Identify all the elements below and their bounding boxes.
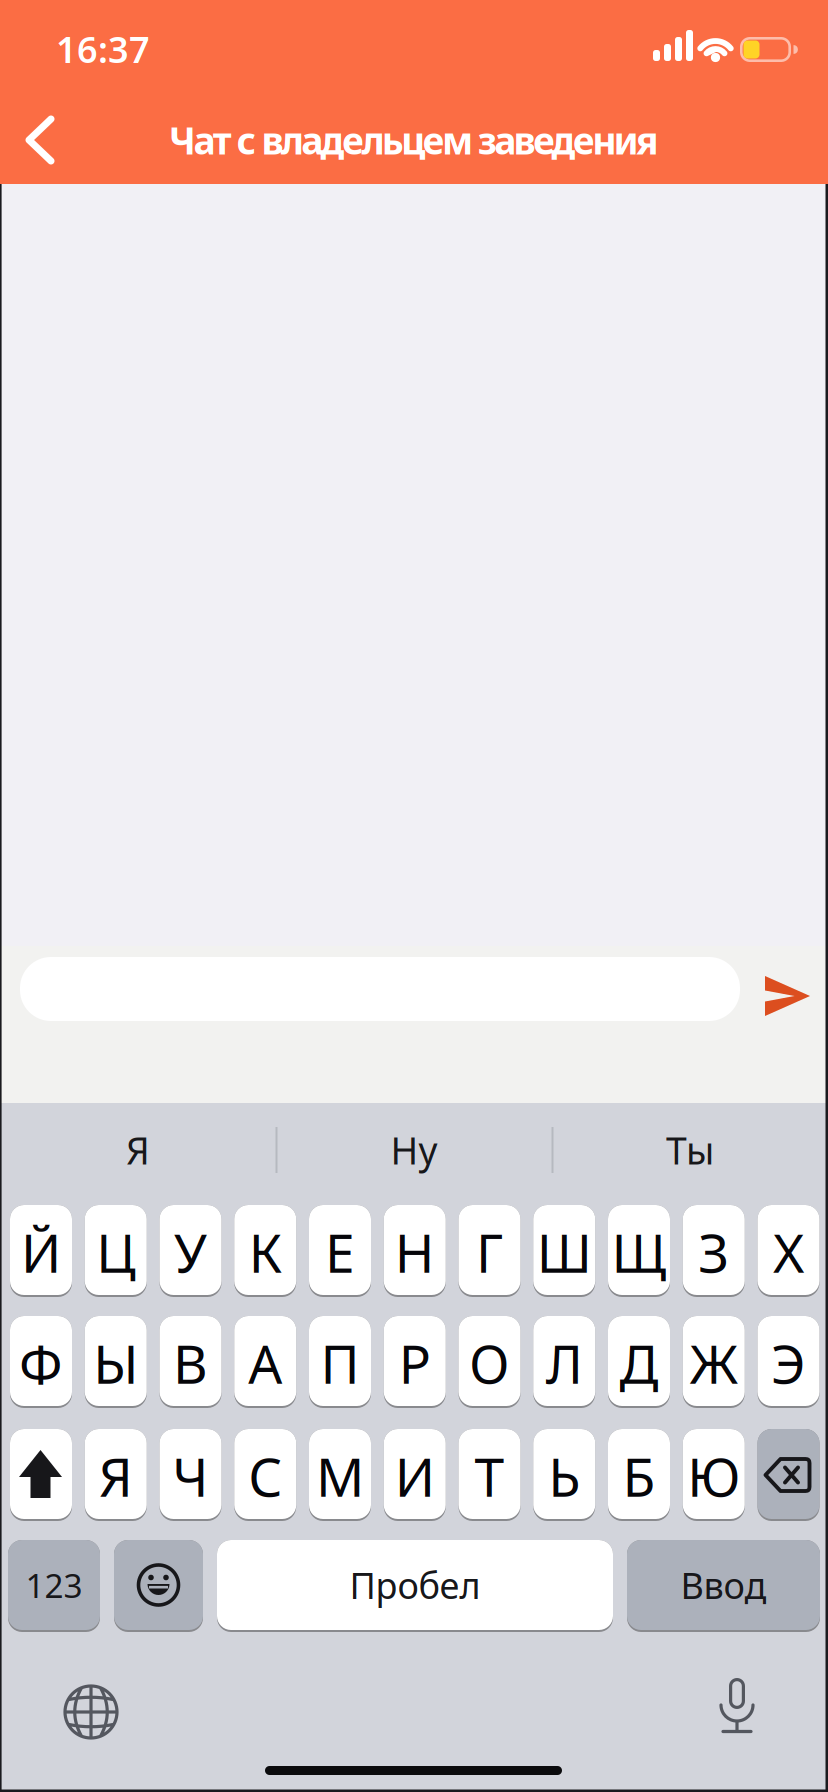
staticText: Ь (548, 1441, 580, 1511)
button[interactable]: М (309, 1429, 371, 1521)
button[interactable]: З (683, 1205, 745, 1297)
button[interactable]: Г (458, 1205, 520, 1297)
staticText: Ты (666, 1125, 714, 1175)
button[interactable]: Ю (683, 1429, 745, 1521)
button[interactable]: К (234, 1205, 296, 1297)
button[interactable]: Б (608, 1429, 670, 1521)
button[interactable]: А (234, 1316, 296, 1408)
staticText: Ш (537, 1217, 592, 1287)
button[interactable]: Е (309, 1205, 371, 1297)
staticText: Я (99, 1441, 133, 1511)
button[interactable]: Я (85, 1429, 147, 1521)
button[interactable]: Ну (279, 1104, 549, 1196)
button[interactable]: Л (533, 1316, 595, 1408)
button[interactable]: И (384, 1429, 446, 1521)
button[interactable] (705, 1676, 769, 1740)
button[interactable]: Я (3, 1104, 273, 1196)
staticText: Э (771, 1328, 806, 1398)
button[interactable]: У (159, 1205, 221, 1297)
staticText: Чат с владельцем заведения (169, 115, 659, 165)
button[interactable]: Ц (85, 1205, 147, 1297)
button[interactable] (8, 98, 72, 182)
button[interactable]: Э (757, 1316, 819, 1408)
staticText: Б (622, 1441, 655, 1511)
staticText: Я (126, 1125, 150, 1175)
staticText: В (173, 1328, 208, 1398)
staticText: К (249, 1217, 282, 1287)
button[interactable]: Щ (608, 1205, 670, 1297)
button[interactable]: Ты (555, 1104, 825, 1196)
staticText: О (469, 1328, 510, 1398)
button[interactable]: Ь (533, 1429, 595, 1521)
staticText: С (248, 1441, 282, 1511)
button[interactable]: Х (757, 1205, 819, 1297)
staticText: Й (21, 1217, 61, 1287)
button[interactable]: Й (10, 1205, 72, 1297)
staticText: Ы (93, 1328, 138, 1398)
button[interactable]: 123 (8, 1540, 100, 1632)
staticText: Н (395, 1217, 435, 1287)
button[interactable]: Ф (10, 1316, 72, 1408)
staticText: Ц (96, 1217, 135, 1287)
staticText: 123 (25, 1563, 82, 1607)
staticText: Т (474, 1441, 504, 1511)
button[interactable]: Ввод (627, 1540, 820, 1632)
staticText: Х (773, 1217, 804, 1287)
button[interactable]: Р (384, 1316, 446, 1408)
staticText: Ну (390, 1125, 437, 1175)
button[interactable]: Ы (85, 1316, 147, 1408)
staticText: У (174, 1217, 207, 1287)
button[interactable] (10, 1429, 72, 1521)
button[interactable]: Ш (533, 1205, 595, 1297)
staticText: Пробел (349, 1561, 480, 1609)
staticText: Л (546, 1328, 583, 1398)
button[interactable]: С (234, 1429, 296, 1521)
button[interactable]: О (458, 1316, 520, 1408)
staticText: П (320, 1328, 359, 1398)
staticText: Ввод (680, 1561, 766, 1609)
staticText: 16:37 (56, 25, 150, 73)
staticText: Е (325, 1217, 355, 1287)
button[interactable]: Ч (159, 1429, 221, 1521)
staticText: Ч (172, 1441, 208, 1511)
staticText: З (698, 1217, 729, 1287)
button[interactable] (762, 974, 812, 1018)
staticText: Р (399, 1328, 431, 1398)
staticText: Щ (611, 1217, 666, 1287)
button[interactable]: В (159, 1316, 221, 1408)
staticText: Ю (687, 1441, 740, 1511)
button[interactable] (757, 1429, 819, 1521)
staticText: Ф (19, 1328, 63, 1398)
staticText: Ж (690, 1328, 738, 1398)
button[interactable]: Т (458, 1429, 520, 1521)
button[interactable]: П (309, 1316, 371, 1408)
staticText: И (395, 1441, 435, 1511)
button[interactable]: Д (608, 1316, 670, 1408)
staticText: М (316, 1441, 364, 1511)
staticText: Г (476, 1217, 503, 1287)
button[interactable] (59, 1680, 123, 1744)
button[interactable] (114, 1540, 203, 1632)
staticText: А (248, 1328, 282, 1398)
button[interactable]: Пробел (217, 1540, 613, 1632)
staticText: Д (619, 1328, 658, 1398)
button[interactable]: Н (384, 1205, 446, 1297)
button[interactable]: Ж (683, 1316, 745, 1408)
